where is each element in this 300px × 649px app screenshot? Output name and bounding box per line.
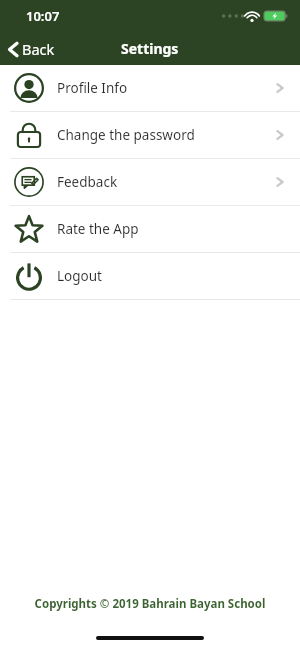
button[interactable]: Back — [0, 35, 65, 63]
staticText: Change the password — [57, 126, 195, 144]
staticText: 10:07 — [26, 7, 60, 25]
button[interactable]: Rate the App — [0, 206, 300, 252]
button[interactable]: Logout — [0, 253, 300, 299]
button[interactable]: Profile Info — [0, 65, 300, 111]
staticText: Copyrights © 2019 Bahrain Bayan School — [0, 596, 300, 612]
staticText: Back — [22, 39, 55, 59]
staticText: Rate the App — [57, 220, 139, 238]
staticText: Profile Info — [57, 79, 128, 97]
staticText: Logout — [57, 267, 102, 285]
staticText: Feedback — [57, 173, 118, 191]
button[interactable]: Change the password — [0, 112, 300, 158]
staticText: Settings — [121, 39, 179, 58]
button[interactable]: Feedback — [0, 159, 300, 205]
